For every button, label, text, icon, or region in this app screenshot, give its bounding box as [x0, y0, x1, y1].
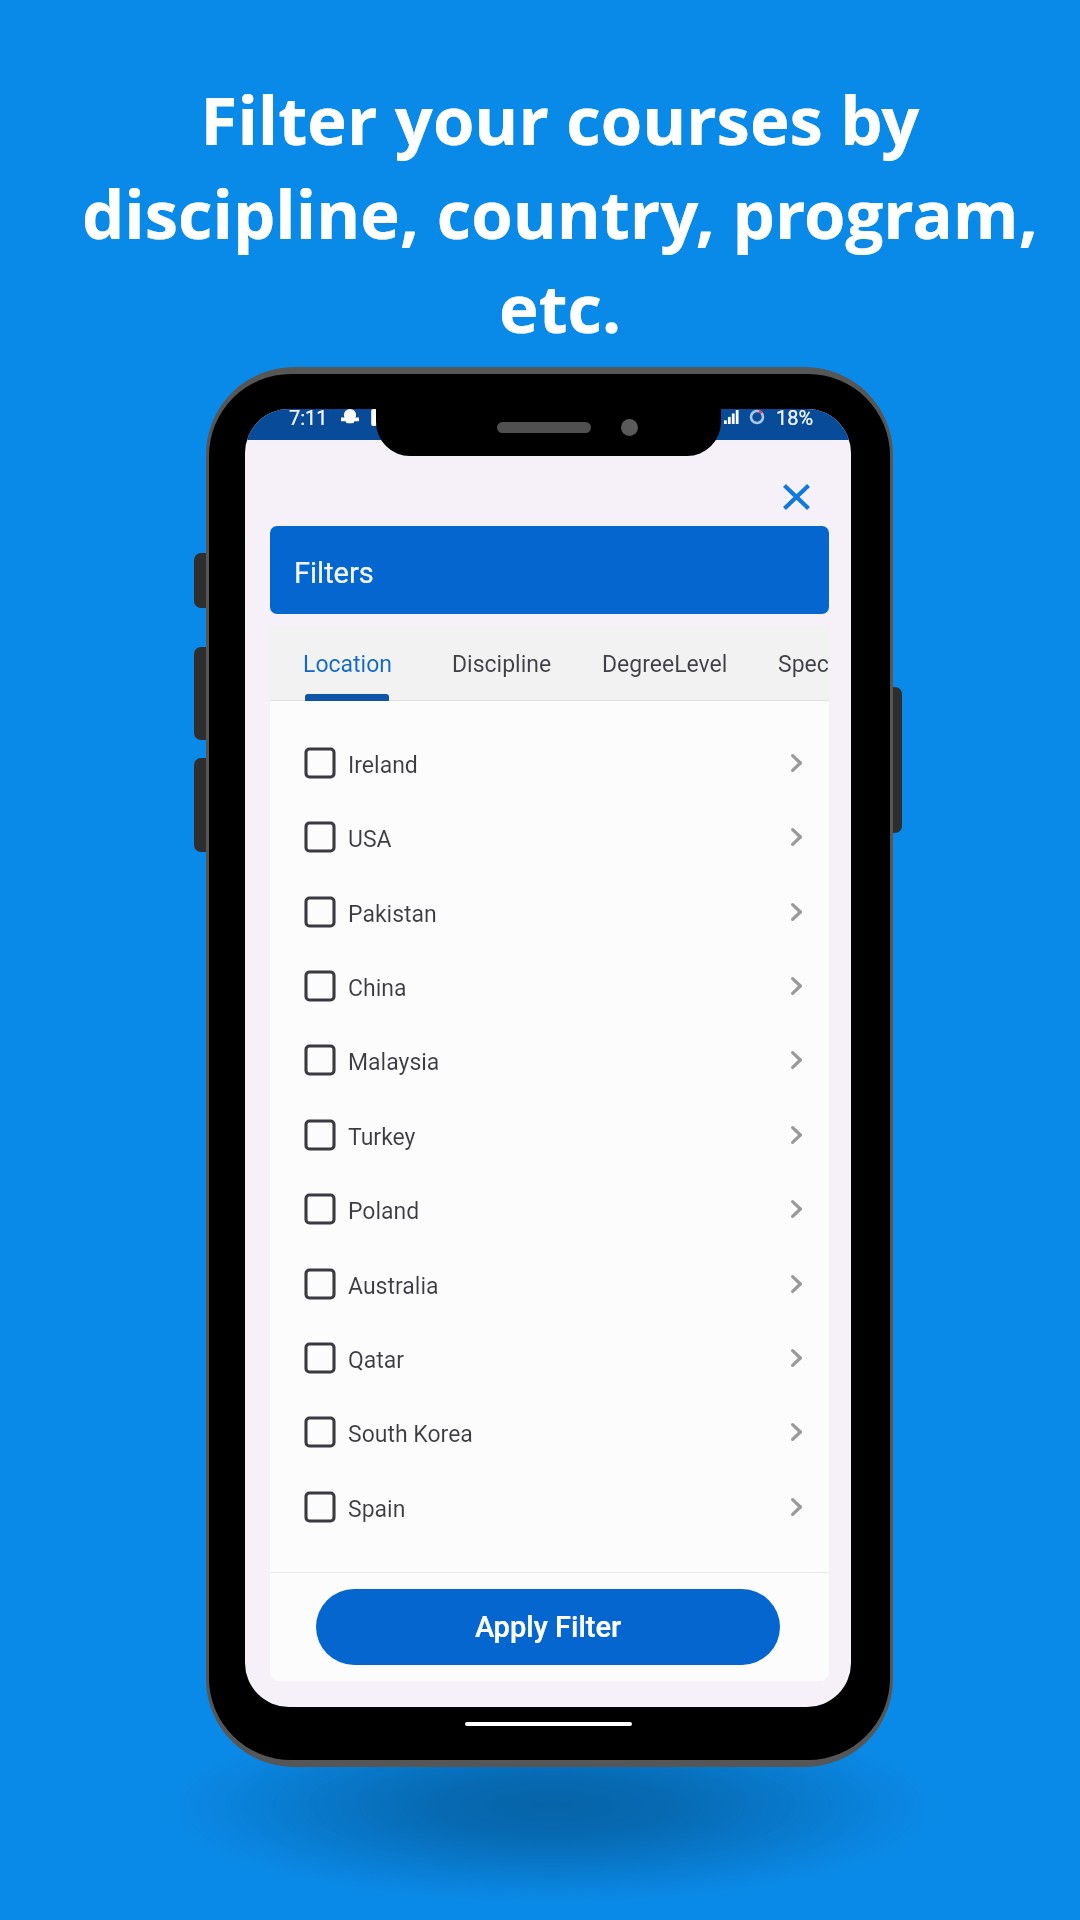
staticText: Australia — [348, 1273, 439, 1300]
button[interactable]: Close — [774, 475, 818, 519]
staticText: USA — [348, 826, 392, 853]
button[interactable]: USA — [270, 800, 829, 874]
staticText: DegreeLevel — [602, 651, 728, 678]
staticText: 18% — [776, 409, 814, 429]
button[interactable]: Ireland — [270, 726, 829, 800]
staticText: Spec — [778, 651, 829, 678]
button[interactable]: South Korea — [270, 1395, 829, 1469]
staticText: Turkey — [348, 1124, 416, 1151]
staticText: China — [348, 975, 407, 1002]
staticText: Ireland — [348, 752, 418, 779]
staticText: Malaysia — [348, 1049, 440, 1076]
button[interactable]: Turkey — [270, 1098, 829, 1172]
staticText: Spain — [348, 1496, 406, 1523]
staticText: 7:11 — [289, 409, 328, 429]
button[interactable]: Qatar — [270, 1321, 829, 1395]
staticText: Filters — [294, 556, 374, 590]
button[interactable]: Australia — [270, 1247, 829, 1321]
button[interactable]: Discipline — [441, 626, 562, 701]
staticText: Poland — [348, 1198, 420, 1225]
button[interactable]: Malaysia — [270, 1023, 829, 1097]
button[interactable]: Poland — [270, 1172, 829, 1246]
staticText: Filter your courses by discipline, count… — [41, 73, 1079, 352]
staticText: Apply Filter — [475, 1610, 622, 1644]
button[interactable]: DegreeLevel — [592, 626, 738, 701]
button[interactable]: Pakistan — [270, 875, 829, 949]
button[interactable]: China — [270, 949, 829, 1023]
button[interactable]: Spec — [754, 626, 829, 701]
staticText: South Korea — [348, 1421, 473, 1448]
button[interactable]: Filters — [270, 526, 829, 614]
button[interactable]: Spain — [270, 1470, 829, 1544]
staticText: Pakistan — [348, 901, 437, 928]
button[interactable]: Apply Filter — [316, 1589, 780, 1665]
staticText: Discipline — [452, 651, 552, 678]
staticText: Qatar — [348, 1347, 405, 1374]
button[interactable]: Location — [293, 626, 401, 701]
staticText: Location — [303, 651, 392, 678]
